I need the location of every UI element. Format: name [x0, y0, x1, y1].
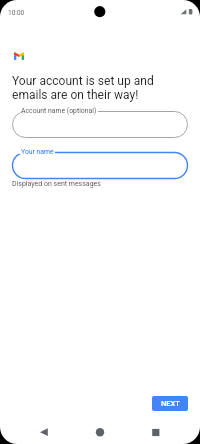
button[interactable]: NEXT: [152, 396, 188, 411]
button[interactable]: Home: [88, 420, 112, 444]
staticText: Your account is set up and: [12, 74, 154, 88]
staticText: Displayed on sent messages: [12, 180, 101, 188]
button[interactable]: Back: [32, 420, 56, 444]
button[interactable]: Recent apps: [144, 420, 168, 444]
button[interactable]: Account name (optional): [12, 111, 188, 138]
staticText: emails are on their way!: [12, 88, 139, 102]
staticText: NEXT: [161, 399, 180, 408]
button[interactable]: Your name: [12, 152, 188, 179]
staticText: Account name (optional): [21, 107, 97, 115]
staticText: 10:00: [8, 9, 25, 17]
staticText: Your name: [21, 148, 54, 156]
